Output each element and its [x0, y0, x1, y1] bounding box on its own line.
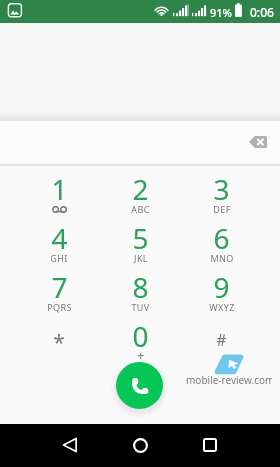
staticText: 4: [51, 219, 68, 257]
staticText: 0:06: [250, 4, 274, 20]
button[interactable]: 1: [18, 170, 100, 219]
button[interactable]: 5: [100, 219, 181, 268]
button[interactable]: 7: [18, 268, 100, 317]
button[interactable]: Recents: [189, 424, 231, 466]
button[interactable]: 9: [181, 268, 262, 317]
button[interactable]: Backspace: [237, 121, 279, 163]
button[interactable]: Back: [49, 424, 91, 466]
staticText: DEF: [213, 203, 231, 215]
button[interactable]: 8: [100, 268, 181, 317]
staticText: JKL: [134, 252, 148, 264]
staticText: 1: [51, 170, 68, 208]
staticText: 0: [132, 317, 149, 355]
staticText: MNO: [210, 252, 234, 264]
staticText: 6: [213, 219, 230, 257]
staticText: WXYZ: [209, 301, 235, 313]
staticText: *: [53, 328, 65, 357]
staticText: 91%: [210, 5, 232, 20]
button[interactable]: #: [181, 317, 262, 366]
button[interactable]: 4: [18, 219, 100, 268]
button[interactable]: 2: [100, 170, 181, 219]
button[interactable]: *: [18, 317, 100, 366]
staticText: 9: [213, 268, 230, 306]
button[interactable]: 3: [181, 170, 262, 219]
staticText: PQRS: [47, 301, 72, 313]
staticText: GHI: [50, 252, 68, 264]
staticText: 3: [213, 170, 230, 208]
staticText: 8: [132, 268, 149, 306]
staticText: #: [216, 329, 227, 351]
staticText: ABC: [131, 203, 150, 215]
button[interactable]: 0: [100, 317, 181, 366]
staticText: +: [137, 346, 145, 364]
staticText: TUV: [131, 301, 150, 313]
staticText: mobile-review.com: [186, 373, 272, 387]
staticText: 7: [51, 268, 68, 306]
button[interactable]: Call: [116, 362, 163, 409]
button[interactable]: Home: [119, 424, 161, 466]
button[interactable]: 6: [181, 219, 262, 268]
staticText: 5: [132, 219, 149, 257]
staticText: 2: [132, 170, 149, 208]
